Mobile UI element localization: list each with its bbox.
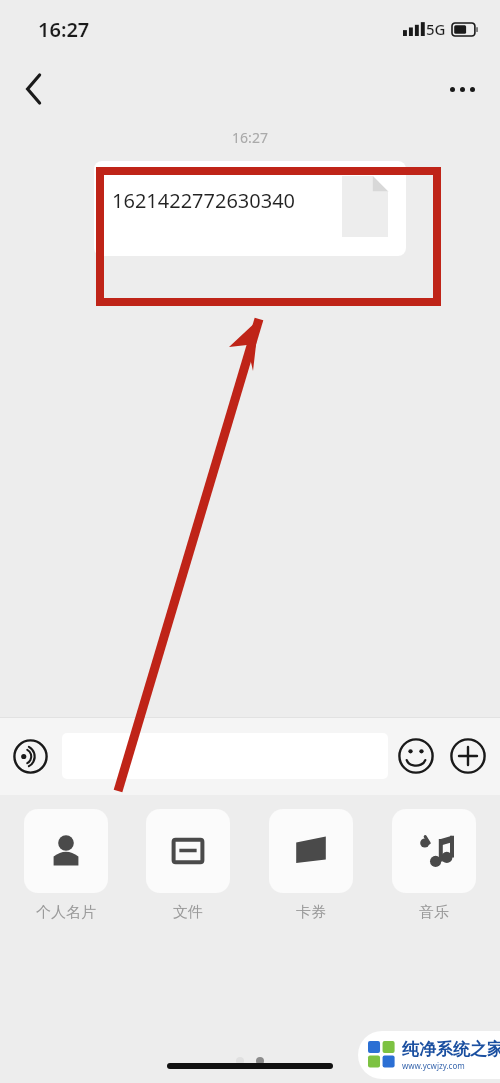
button[interactable]: 个人名片 bbox=[16, 809, 116, 922]
staticText: 5G bbox=[426, 19, 446, 39]
button[interactable]: 音乐 bbox=[383, 809, 484, 922]
button[interactable]: Voice input bbox=[8, 734, 52, 778]
button[interactable]: Add attachment bbox=[446, 734, 490, 778]
staticText: 个人名片 bbox=[36, 903, 96, 922]
staticText: 纯净系统之家 bbox=[402, 1039, 500, 1060]
staticText: 16:27 bbox=[38, 16, 90, 43]
button[interactable]: 文件 bbox=[138, 809, 238, 922]
staticText: www.ycwjzy.com bbox=[402, 1060, 465, 1071]
staticText: 1621422772630340 bbox=[112, 187, 296, 214]
staticText: 文件 bbox=[173, 903, 203, 922]
button[interactable]: 卡券 bbox=[260, 809, 361, 922]
staticText: 16:27 bbox=[0, 128, 500, 147]
button[interactable] bbox=[62, 733, 388, 779]
button[interactable]: Back bbox=[10, 65, 58, 113]
button[interactable]: 1621422772630340 bbox=[94, 161, 406, 256]
button[interactable]: Emoji bbox=[394, 734, 438, 778]
button[interactable]: More options bbox=[438, 65, 486, 113]
staticText: 音乐 bbox=[419, 903, 449, 922]
staticText: 卡券 bbox=[296, 903, 326, 922]
